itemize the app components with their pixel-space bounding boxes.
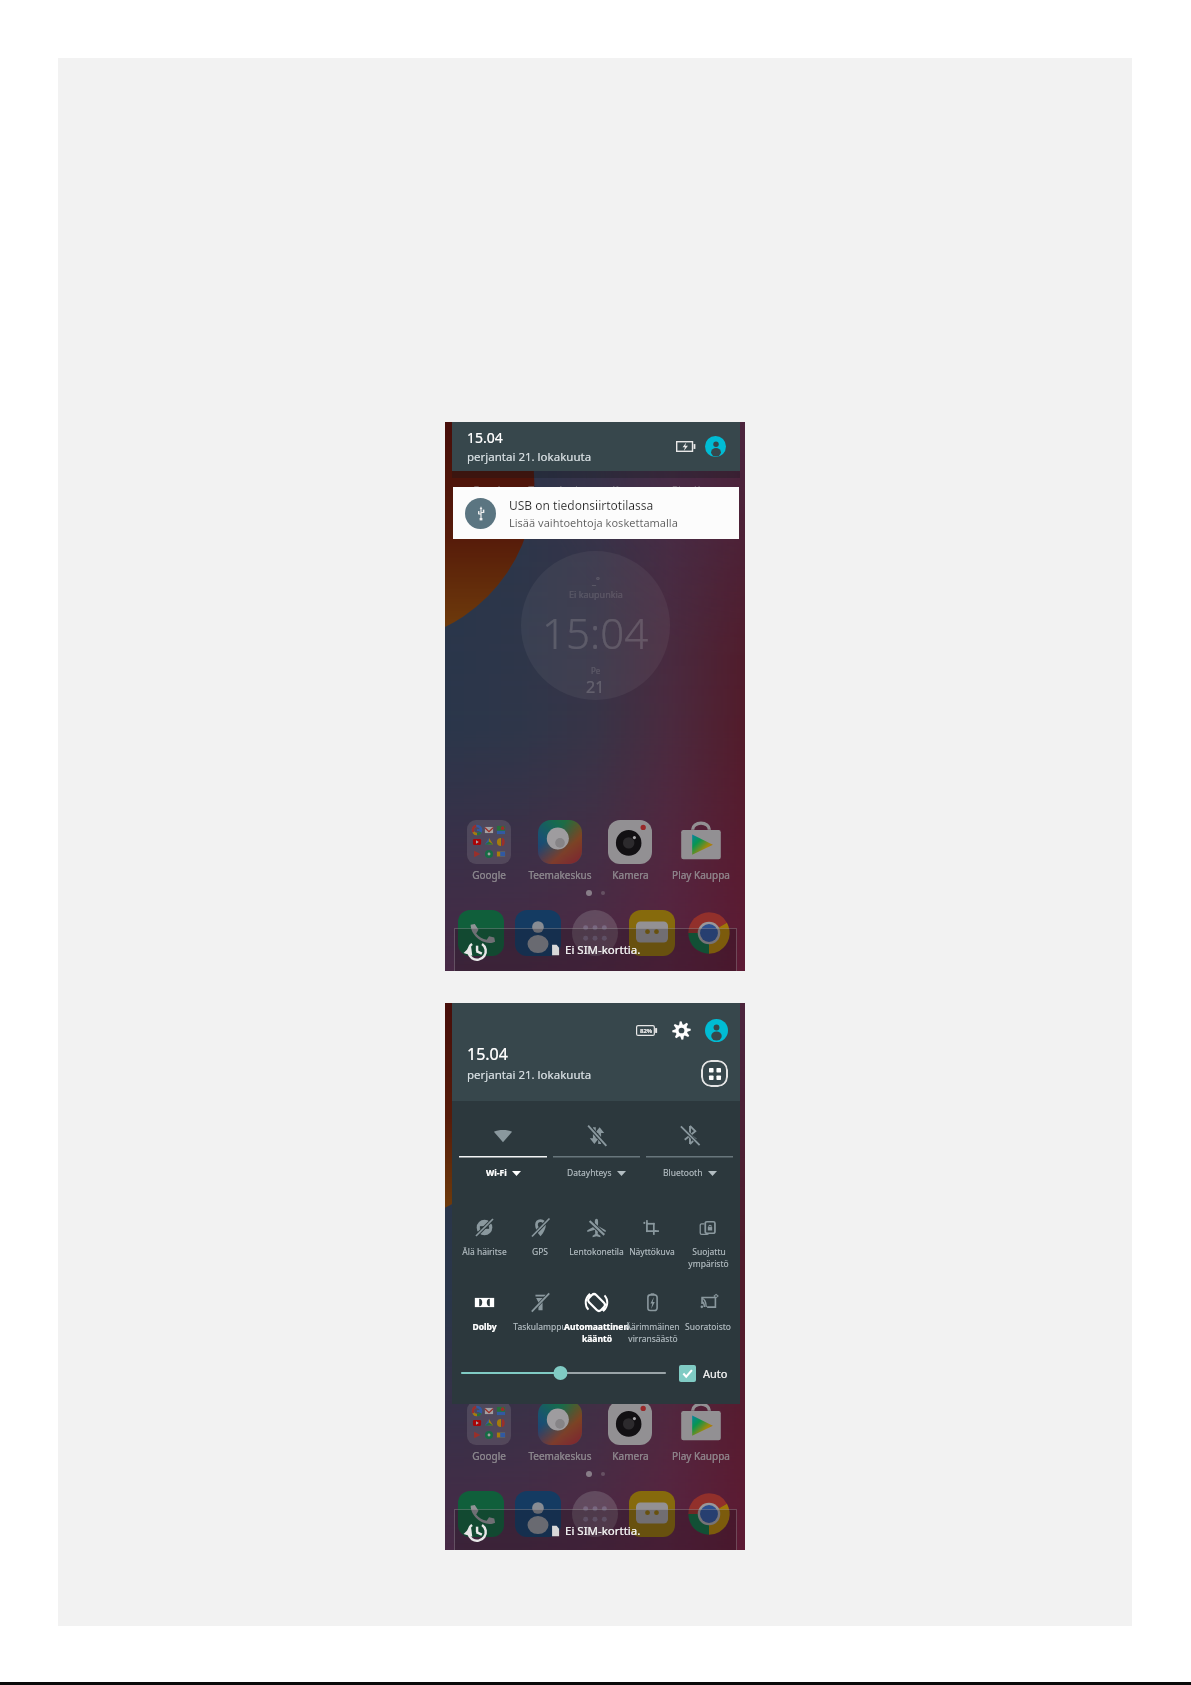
staticText: perjantai 21. lokakuuta	[467, 1067, 592, 1083]
staticText: Google	[472, 868, 506, 882]
other: Recent	[462, 1517, 491, 1546]
button[interactable]: App	[514, 909, 562, 957]
staticText: Kamera	[612, 1449, 649, 1463]
staticText: Suoratoisto	[685, 1321, 731, 1333]
button[interactable]: Suoratoisto	[680, 1291, 736, 1333]
staticText: Teemakeskus	[528, 868, 592, 882]
other: Battery charging	[676, 441, 696, 452]
staticText: Play Kauppa	[672, 868, 730, 882]
button[interactable]: Älä häiritse	[456, 1216, 512, 1258]
button[interactable]: Näyttökuva	[624, 1216, 680, 1258]
staticText: Ei SIM-korttia.	[565, 1523, 641, 1539]
button[interactable]: Dolby	[456, 1291, 512, 1333]
button[interactable]: Taskulamppu	[512, 1291, 568, 1333]
button[interactable]: Datayhteys	[550, 1123, 643, 1179]
button[interactable]: Play Kauppa	[669, 1401, 733, 1463]
staticText: Suojattu	[692, 1246, 726, 1258]
button[interactable]: Clock widget	[521, 1132, 670, 1281]
staticText: Ei kaupunkia	[569, 1169, 623, 1181]
button[interactable]: Wi-Fi	[456, 1123, 550, 1179]
button[interactable]: Teemakeskus	[528, 820, 592, 882]
staticText: 21	[586, 676, 605, 698]
button[interactable]: Edit tiles	[701, 1060, 728, 1087]
staticText: Näyttökuva	[629, 1246, 675, 1258]
button[interactable]: Google	[457, 820, 521, 882]
button[interactable]: USB on tiedonsiirtotilassa	[453, 487, 739, 539]
button[interactable]: App	[571, 909, 619, 957]
button[interactable]: App	[628, 909, 676, 957]
staticText: Lentokonetila	[569, 1246, 624, 1258]
button[interactable]: GPS	[512, 1216, 568, 1258]
staticText: Pe	[591, 665, 601, 676]
button[interactable]: App	[571, 1490, 619, 1538]
button[interactable]: Brightness	[462, 1363, 665, 1383]
button[interactable]: User profile	[705, 1019, 728, 1042]
button[interactable]: Recent	[454, 1509, 737, 1550]
staticText: kääntö	[582, 1333, 612, 1345]
staticText: 82%	[640, 1027, 653, 1035]
button[interactable]: Automaattinen	[568, 1291, 624, 1345]
staticText: Google	[472, 483, 506, 497]
button[interactable]: App	[685, 909, 733, 957]
staticText: Google	[472, 1064, 506, 1078]
staticText: Taskulamppu	[513, 1321, 567, 1333]
staticText: Kamera	[612, 868, 649, 882]
button[interactable]: App	[457, 1490, 505, 1538]
staticText: Automaattinen	[564, 1321, 629, 1333]
button[interactable]: Bluetooth	[643, 1123, 736, 1179]
button[interactable]: Google	[457, 1401, 521, 1463]
staticText: 15.04	[467, 428, 503, 447]
button[interactable]: App	[514, 1490, 562, 1538]
button[interactable]: App	[628, 1490, 676, 1538]
button[interactable]: Settings	[672, 1021, 691, 1040]
button[interactable]: Kamera	[598, 1401, 662, 1463]
button[interactable]: Recent	[454, 928, 737, 971]
button[interactable]: App	[685, 1490, 733, 1538]
staticText: USB on tiedonsiirtotilassa	[509, 497, 654, 513]
staticText: 15.04	[467, 1043, 508, 1065]
staticText: Ei SIM-korttia.	[565, 942, 641, 958]
button[interactable]: Suojattu	[680, 1216, 736, 1270]
staticText: Google	[472, 1449, 506, 1463]
staticText: °	[596, 574, 600, 586]
staticText: Lisää vaihtoehtoja koskettamalla	[509, 515, 678, 530]
staticText: Dolby	[472, 1321, 497, 1333]
staticText: _	[592, 1155, 596, 1167]
staticText: Teemakeskus	[528, 1449, 592, 1463]
button[interactable]: User profile	[705, 436, 726, 457]
button[interactable]: Äärimmäinen	[624, 1291, 680, 1345]
staticText: 15:04	[542, 1185, 649, 1242]
staticText: Äärimmäinen	[625, 1321, 680, 1333]
staticText: Bluetooth	[663, 1167, 703, 1179]
staticText: ympäristö	[688, 1258, 729, 1270]
button[interactable]: Lentokonetila	[568, 1216, 624, 1258]
other: Recent	[462, 936, 491, 965]
other: Battery 82 percent	[636, 1025, 658, 1036]
staticText: Teemakeskus	[528, 483, 592, 497]
staticText: Ei kaupunkia	[569, 588, 623, 600]
staticText: virransäästö	[628, 1333, 678, 1345]
button[interactable]: Kamera	[598, 820, 662, 882]
staticText: Play Kauppa	[672, 1449, 730, 1463]
staticText: GPS	[532, 1246, 548, 1258]
staticText: Pe	[591, 1246, 601, 1257]
button[interactable]: Teemakeskus	[528, 1401, 592, 1463]
staticText: 15:04	[542, 604, 649, 661]
staticText: Wi-Fi	[486, 1167, 507, 1179]
staticText: _	[592, 574, 596, 586]
staticText: Play Kauppa	[672, 1064, 730, 1078]
staticText: Auto	[703, 1366, 728, 1381]
staticText: °	[596, 1155, 600, 1167]
button[interactable]: Clock widget	[521, 551, 670, 700]
button[interactable]: App	[457, 909, 505, 957]
staticText: Datayhteys	[567, 1167, 612, 1179]
staticText: Teemakeskus	[528, 1064, 592, 1078]
staticText: Älä häiritse	[462, 1246, 507, 1258]
staticText: Kamera	[612, 483, 649, 497]
staticText: Play Kauppa	[672, 483, 730, 497]
button[interactable]: Play Kauppa	[669, 820, 733, 882]
staticText: perjantai 21. lokakuuta	[467, 449, 592, 465]
button[interactable]: Auto	[679, 1365, 728, 1382]
